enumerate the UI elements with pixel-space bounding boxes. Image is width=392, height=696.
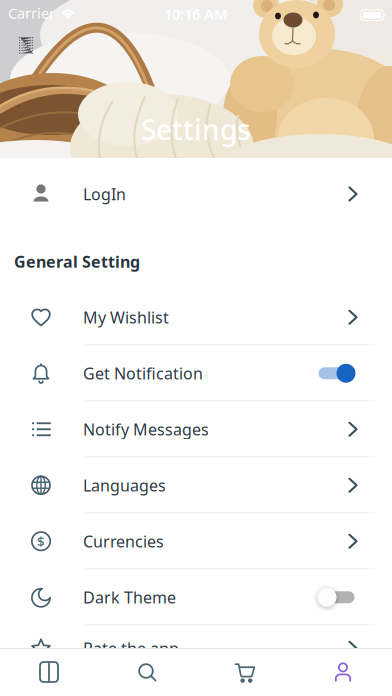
staticText: Get Notification <box>83 363 203 384</box>
staticText: Languages <box>83 475 166 496</box>
button[interactable]: Get Notification <box>0 345 392 401</box>
staticText: Notify Messages <box>83 419 209 440</box>
button[interactable]: Languages <box>0 457 392 513</box>
button[interactable]: Notify Messages <box>0 401 392 457</box>
staticText: General Setting <box>14 251 140 272</box>
staticText: $ <box>37 532 45 550</box>
button[interactable]: $ <box>0 513 392 569</box>
button[interactable]: Profile <box>294 649 392 695</box>
staticText: 10:16 AM <box>164 4 228 24</box>
staticText: Carrier <box>8 3 55 23</box>
staticText: My Wishlist <box>83 307 169 328</box>
button[interactable]: Search <box>98 649 196 695</box>
button[interactable]: Cart <box>196 649 294 695</box>
staticText: Currencies <box>83 531 164 552</box>
staticText: LogIn <box>83 183 126 205</box>
button[interactable]: Dark Theme <box>0 569 392 625</box>
button[interactable]: Catalog <box>0 649 98 695</box>
staticText: Settings <box>141 111 251 148</box>
button[interactable]: My Wishlist <box>0 289 392 345</box>
staticText: Rate the app <box>83 638 179 659</box>
button[interactable]: Rate the app <box>0 625 392 681</box>
staticText: Dark Theme <box>83 587 176 608</box>
button[interactable]: LogIn <box>0 166 392 222</box>
